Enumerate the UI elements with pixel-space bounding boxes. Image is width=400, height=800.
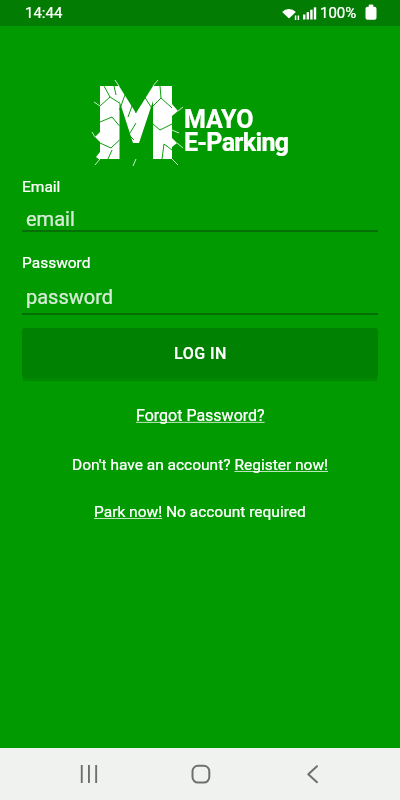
staticText: 14:44: [25, 4, 63, 22]
button[interactable]: [65, 750, 113, 798]
staticText: LOG IN: [174, 344, 227, 363]
staticText: password: [26, 285, 114, 308]
button[interactable]: LOG IN: [22, 328, 378, 378]
button[interactable]: password: [22, 283, 378, 315]
staticText: email: [26, 207, 75, 230]
button[interactable]: Park now! No account required: [94, 503, 306, 521]
button[interactable]: Forgot Password?: [136, 406, 265, 425]
staticText: Email: [22, 178, 61, 196]
staticText: 100%: [320, 4, 357, 22]
staticText: Password: [22, 254, 91, 272]
button[interactable]: Don't have an account? Register now!: [72, 456, 329, 474]
button[interactable]: email: [22, 200, 378, 232]
button[interactable]: [177, 750, 225, 798]
staticText: MAYO: [184, 105, 254, 134]
button[interactable]: [289, 750, 337, 798]
staticText: E-Parking: [184, 128, 289, 157]
